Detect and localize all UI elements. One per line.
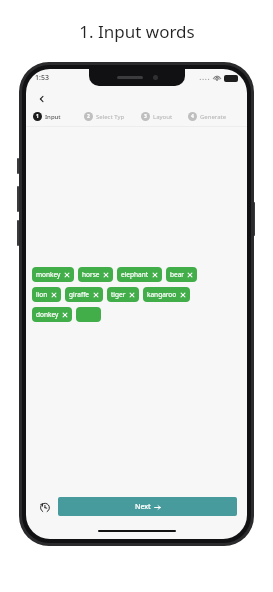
staticText: 2 bbox=[87, 113, 90, 120]
staticText: lion bbox=[36, 290, 48, 299]
button[interactable]: Add word bbox=[76, 307, 101, 322]
staticText: elephant bbox=[121, 270, 149, 279]
staticText: horse bbox=[82, 270, 100, 279]
button[interactable]: 2 bbox=[84, 108, 141, 125]
button[interactable]: donkey bbox=[32, 307, 72, 322]
staticText: Select Typ bbox=[96, 113, 125, 121]
button[interactable]: lion bbox=[32, 287, 61, 302]
staticText: 4 bbox=[191, 113, 194, 120]
button[interactable]: History bbox=[36, 499, 52, 515]
staticText: monkey bbox=[36, 270, 61, 279]
staticText: 3 bbox=[144, 113, 147, 120]
button[interactable]: Back bbox=[35, 92, 49, 106]
button[interactable]: giraffe bbox=[65, 287, 103, 302]
staticText: 1:53 bbox=[35, 73, 49, 83]
button[interactable]: elephant bbox=[117, 267, 162, 282]
button[interactable]: tiger bbox=[107, 287, 139, 302]
staticText: Input bbox=[45, 113, 61, 121]
button[interactable]: Next bbox=[58, 497, 237, 516]
staticText: tiger bbox=[111, 290, 126, 299]
staticText: giraffe bbox=[69, 290, 90, 299]
staticText: Next bbox=[135, 502, 151, 512]
button[interactable]: monkey bbox=[32, 267, 74, 282]
button[interactable]: kangaroo bbox=[143, 287, 190, 302]
staticText: 1 bbox=[36, 113, 39, 120]
button[interactable]: horse bbox=[78, 267, 113, 282]
staticText: 1. Input words bbox=[79, 20, 195, 43]
staticText: kangaroo bbox=[147, 290, 177, 299]
staticText: Generate bbox=[200, 113, 227, 121]
button[interactable]: 4 bbox=[188, 108, 240, 125]
staticText: bear bbox=[170, 270, 184, 279]
button[interactable]: 3 bbox=[141, 108, 188, 125]
staticText: Layout bbox=[153, 113, 173, 121]
staticText: donkey bbox=[36, 310, 59, 319]
button[interactable]: 1 bbox=[33, 108, 84, 125]
button[interactable]: bear bbox=[166, 267, 197, 282]
